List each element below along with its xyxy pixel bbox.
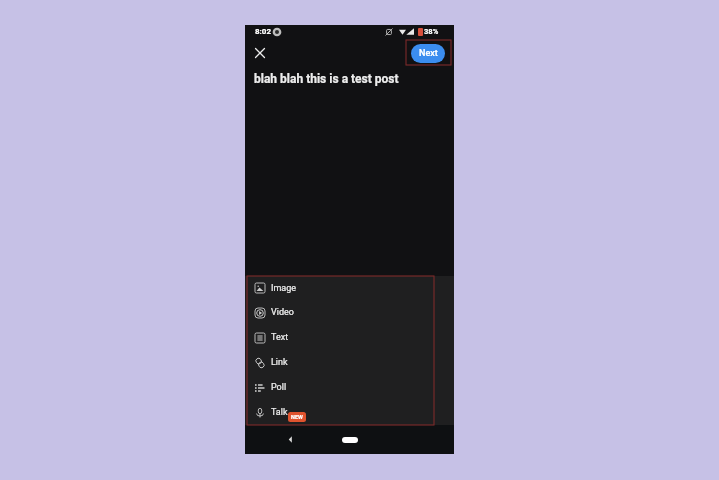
staticText: blah blah this is a test post: [254, 72, 399, 86]
staticText: Next: [419, 48, 438, 59]
button[interactable]: Close: [252, 45, 268, 61]
staticText: NEW: [291, 414, 303, 420]
button[interactable]: Poll: [245, 375, 454, 400]
button[interactable]: Home: [342, 437, 358, 443]
staticText: Video: [271, 307, 294, 318]
staticText: Text: [271, 332, 289, 343]
button[interactable]: Video: [245, 300, 454, 325]
staticText: Poll: [271, 382, 287, 393]
staticText: Image: [271, 283, 297, 294]
button[interactable]: Link: [245, 350, 454, 375]
button[interactable]: Talk: [245, 400, 454, 425]
staticText: Link: [271, 357, 288, 368]
staticText: 8:02: [255, 27, 272, 36]
button[interactable]: Image: [245, 276, 454, 300]
button[interactable]: Back: [285, 434, 296, 445]
button[interactable]: Text: [245, 325, 454, 350]
staticText: Talk: [271, 407, 288, 418]
button[interactable]: Next: [411, 44, 445, 63]
staticText: 38%: [424, 27, 439, 36]
